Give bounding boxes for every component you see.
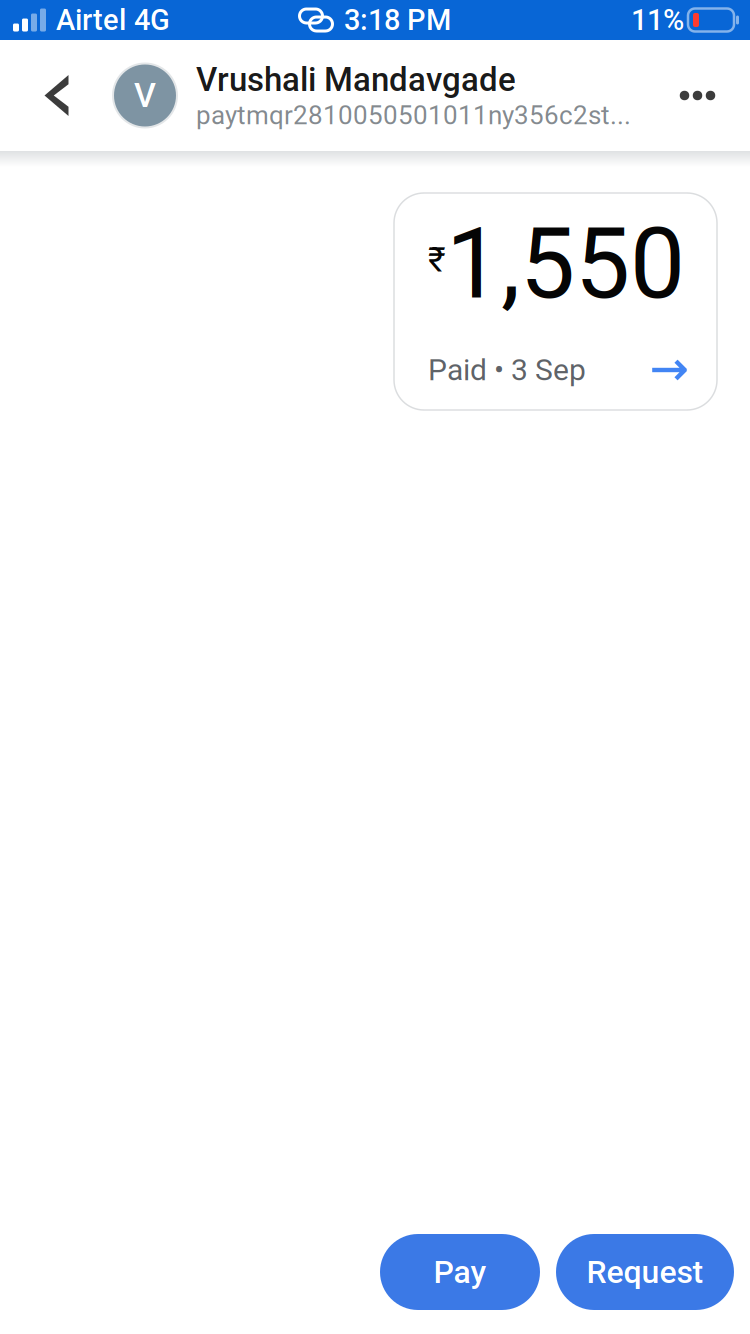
button[interactable]: Request	[556, 1234, 734, 1310]
staticText: Request	[586, 1253, 703, 1291]
staticText: Pay	[433, 1253, 486, 1291]
staticText: 11%	[631, 3, 684, 37]
button[interactable]: More options	[645, 40, 750, 151]
staticText: Vrushali Mandavgade	[196, 60, 516, 99]
staticText: paytmqr2810050501011ny356c2st...	[196, 100, 631, 131]
button[interactable]: Back	[0, 40, 113, 151]
staticText: 3:18 PM	[344, 3, 451, 37]
staticText: V	[134, 76, 156, 115]
staticText: Paid • 3 Sep	[428, 352, 586, 388]
staticText: Airtel	[56, 3, 126, 37]
button[interactable]: Pay	[380, 1234, 540, 1310]
staticText: ₹	[428, 240, 446, 280]
button[interactable]: ₹	[394, 193, 717, 410]
staticText: 1,550	[446, 207, 685, 321]
staticText: 4G	[134, 3, 170, 37]
